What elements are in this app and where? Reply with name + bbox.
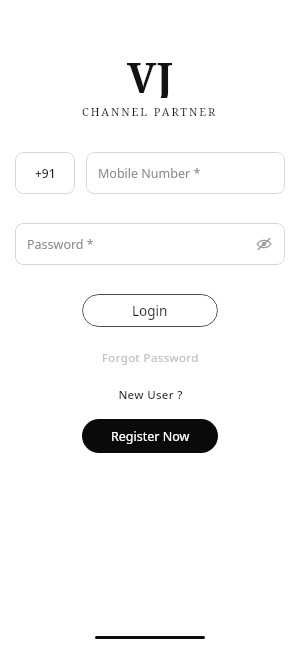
button[interactable]: Show password bbox=[251, 231, 277, 257]
staticText: Mobile Number * bbox=[98, 165, 201, 182]
button[interactable]: Forgot Password bbox=[96, 348, 205, 368]
button[interactable]: Register Now bbox=[82, 419, 218, 453]
button[interactable]: Password * bbox=[15, 223, 285, 265]
button[interactable]: Login bbox=[82, 294, 218, 327]
staticText: Register Now bbox=[111, 428, 190, 445]
button[interactable]: +91 bbox=[15, 152, 75, 194]
staticText: Password * bbox=[27, 236, 94, 253]
staticText: +91 bbox=[35, 165, 56, 181]
button[interactable]: Mobile Number * bbox=[86, 152, 285, 194]
staticText: CHANNEL PARTNER bbox=[82, 104, 218, 119]
staticText: Login bbox=[132, 302, 168, 320]
staticText: New User ? bbox=[118, 387, 183, 403]
staticText: Forgot Password bbox=[102, 350, 199, 366]
staticText: VJ bbox=[127, 48, 173, 98]
